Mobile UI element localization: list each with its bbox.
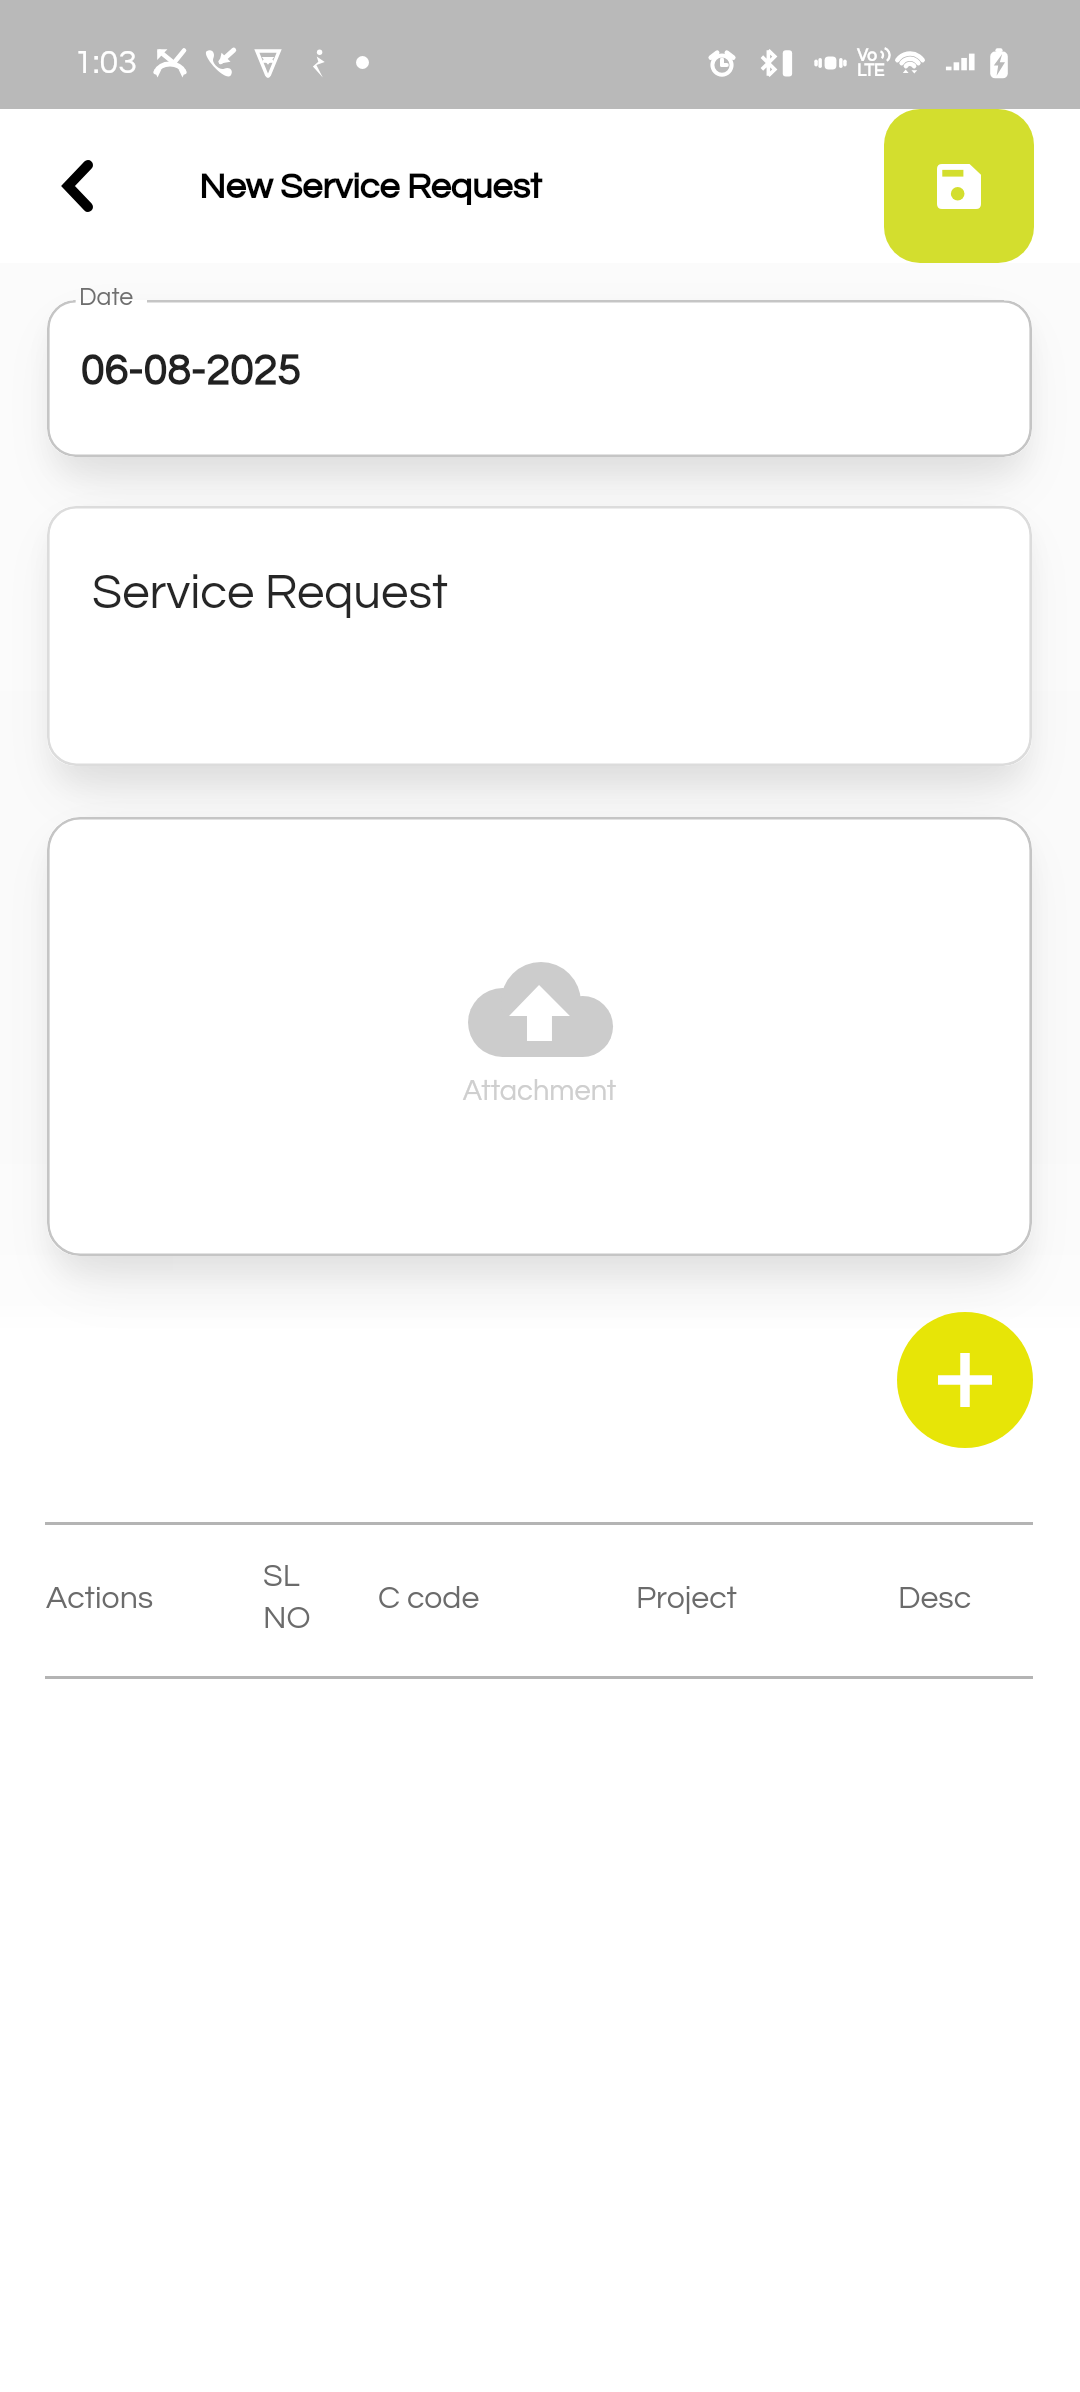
staticText: Desc: [898, 1582, 972, 1615]
staticText: 1:03: [74, 45, 138, 80]
button[interactable]: Back: [28, 136, 128, 236]
staticText: Vo: [857, 47, 877, 65]
staticText: Date: [79, 284, 134, 310]
button[interactable]: Add: [897, 1312, 1033, 1448]
button[interactable]: Attachment: [47, 817, 1032, 1256]
staticText: Project: [636, 1582, 737, 1615]
staticText: SL NO: [263, 1560, 311, 1634]
button[interactable]: Save: [884, 109, 1034, 263]
staticText: Service Request: [92, 568, 448, 618]
staticText: C code: [378, 1582, 480, 1615]
button[interactable]: 06-08-2025: [47, 300, 1032, 457]
button[interactable]: Service Request: [47, 506, 1032, 766]
staticText: 06-08-2025: [81, 349, 302, 393]
staticText: LTE: [857, 62, 885, 80]
staticText: Actions: [46, 1582, 154, 1615]
staticText: New Service Request: [199, 168, 542, 205]
staticText: Attachment: [47, 1076, 1032, 1106]
